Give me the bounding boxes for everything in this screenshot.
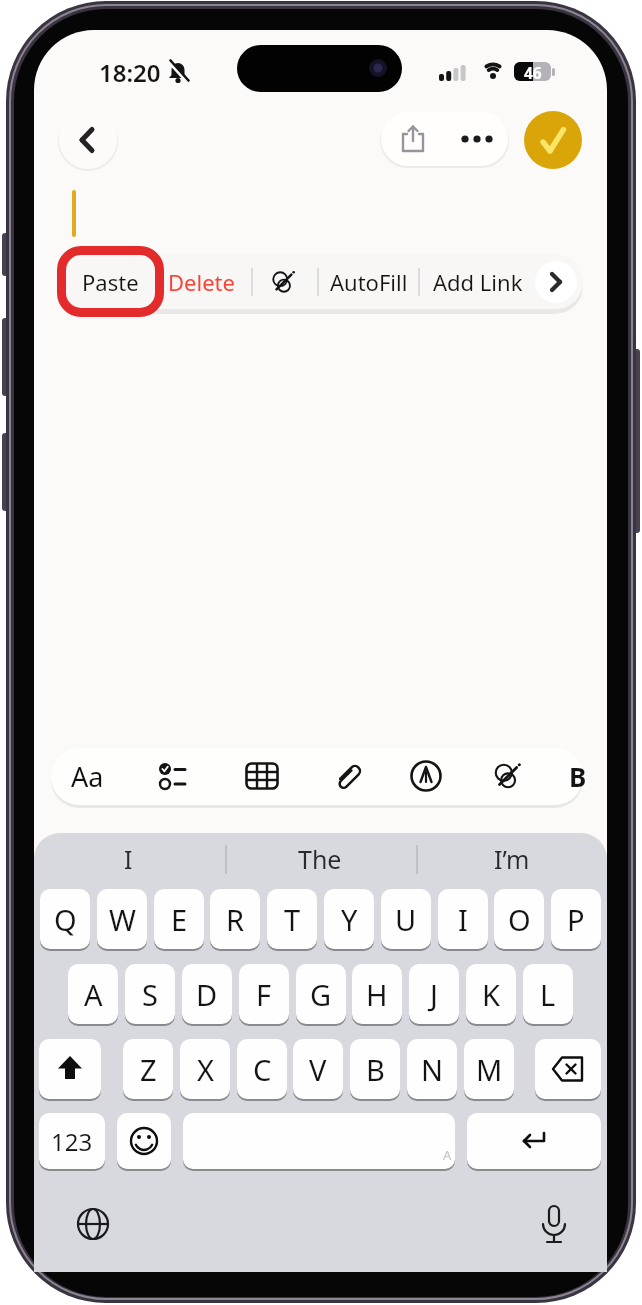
staticText: Delete [168,267,235,297]
staticText: 46 [524,62,542,83]
button[interactable]: A [68,964,118,1024]
button[interactable] [524,111,582,169]
button[interactable]: H [352,964,402,1024]
button[interactable]: L [523,964,573,1024]
button[interactable]: I’m [402,829,622,889]
staticText: B [366,1050,385,1089]
button[interactable] [68,1199,118,1249]
button[interactable]: E [154,889,204,949]
button[interactable] [381,112,445,166]
button[interactable]: K [466,964,516,1024]
button[interactable] [535,1039,601,1099]
staticText: Aa [71,758,104,795]
button[interactable]: J [409,964,459,1024]
button[interactable] [467,1113,601,1169]
button[interactable]: Q [40,889,90,949]
staticText: E [171,900,188,939]
button[interactable]: Delete [91,252,311,312]
staticText: N [421,1050,444,1089]
button[interactable]: B [350,1039,400,1099]
staticText: W [109,900,136,939]
button[interactable]: T [267,889,317,949]
staticText: B [569,759,587,794]
button[interactable]: D [182,964,232,1024]
staticText: V [309,1050,327,1089]
button[interactable]: AutoFill [259,252,479,312]
staticText: P [567,900,585,939]
button[interactable]: X [180,1039,230,1099]
staticText: K [482,975,500,1014]
button[interactable] [183,1113,455,1169]
button[interactable]: Add Link [368,252,588,312]
button[interactable] [535,261,577,303]
staticText: 18:20 [99,56,161,89]
button[interactable] [117,1113,171,1169]
button[interactable] [242,756,282,796]
staticText: A [443,1146,452,1164]
button[interactable]: N [407,1039,457,1099]
button[interactable]: The [210,829,430,889]
button[interactable] [152,756,192,796]
staticText: I [124,842,133,876]
button[interactable] [445,112,508,166]
staticText: H [366,975,388,1014]
staticText: A [84,975,103,1014]
staticText: G [310,975,332,1014]
staticText: I [458,900,468,939]
staticText: Add Link [433,267,523,297]
button[interactable]: B [468,746,642,806]
button[interactable]: Y [324,889,374,949]
button[interactable]: Aa [0,746,197,806]
staticText: D [196,975,218,1014]
staticText: I’m [494,842,530,876]
staticText: U [395,900,417,939]
staticText: R [226,900,245,939]
staticText: X [197,1050,214,1089]
button[interactable]: M [464,1039,514,1099]
staticText: T [284,900,301,939]
staticText: O [508,900,531,939]
button[interactable]: W [97,889,147,949]
staticText: The [298,842,342,876]
button[interactable]: Paste [0,252,220,312]
button[interactable]: O [494,889,544,949]
staticText: AutoFill [330,267,408,297]
button[interactable]: 123 [39,1113,105,1169]
staticText: F [256,975,272,1014]
button[interactable] [406,756,446,796]
button[interactable]: U [381,889,431,949]
button[interactable]: S [125,964,175,1024]
button[interactable]: I [18,829,238,889]
staticText: Y [341,900,358,939]
button[interactable]: G [296,964,346,1024]
staticText: Q [54,900,77,939]
button[interactable]: V [293,1039,343,1099]
staticText: C [253,1050,272,1089]
staticText: Z [140,1050,157,1089]
button[interactable] [330,756,370,796]
button[interactable] [265,264,301,300]
staticText: 123 [51,1125,93,1158]
button[interactable] [529,1199,579,1251]
staticText: L [540,975,556,1014]
button[interactable]: P [551,889,601,949]
button[interactable] [59,111,117,169]
button[interactable]: C [237,1039,287,1099]
staticText: Paste [82,267,139,297]
button[interactable]: Z [123,1039,173,1099]
button[interactable]: I [438,889,488,949]
button[interactable] [487,756,527,796]
staticText: M [476,1050,503,1089]
staticText: J [430,975,438,1014]
button[interactable]: F [239,964,289,1024]
button[interactable]: R [210,889,260,949]
staticText: S [142,975,158,1014]
button[interactable] [39,1039,101,1099]
